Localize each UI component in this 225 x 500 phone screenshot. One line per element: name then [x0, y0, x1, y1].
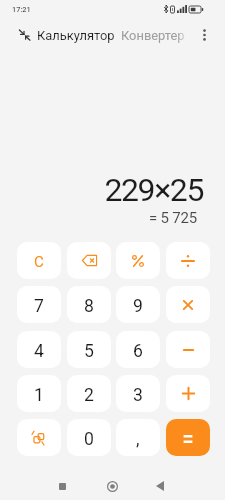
button[interactable]: 0 — [67, 419, 111, 456]
button[interactable] — [166, 419, 210, 456]
button[interactable] — [166, 242, 210, 279]
button[interactable]: , — [116, 419, 160, 456]
button[interactable]: 6 — [116, 331, 160, 368]
staticText: , — [136, 429, 140, 450]
button[interactable]: 1 — [17, 375, 61, 412]
staticText: 2 — [84, 385, 94, 406]
staticText: = 5 725 — [149, 209, 197, 227]
button[interactable]: Recents — [50, 474, 74, 498]
button[interactable]: 3 — [116, 375, 160, 412]
button[interactable]: Back — [148, 474, 172, 498]
staticText: 9 — [133, 296, 143, 317]
button[interactable] — [17, 419, 61, 456]
staticText: Конвертер — [121, 28, 185, 43]
staticText: 8 — [84, 296, 94, 317]
staticText: 1 — [34, 385, 44, 406]
staticText: 229×25 — [104, 171, 203, 209]
button[interactable] — [116, 242, 160, 279]
button[interactable] — [67, 242, 111, 279]
button[interactable] — [166, 375, 210, 412]
button[interactable]: C — [17, 242, 61, 279]
button[interactable]: Конвертер — [121, 28, 185, 43]
button[interactable]: 8 — [67, 286, 111, 323]
button[interactable]: 9 — [116, 286, 160, 323]
staticText: C — [34, 253, 44, 271]
staticText: 17:21 — [12, 5, 31, 14]
staticText: 4 — [34, 341, 44, 362]
staticText: 5 — [84, 341, 94, 362]
staticText: 7 — [34, 296, 44, 317]
button[interactable]: Home — [100, 474, 124, 498]
button[interactable]: Калькулятор — [37, 28, 115, 43]
staticText: Калькулятор — [37, 28, 115, 43]
button[interactable] — [166, 331, 210, 368]
button[interactable]: More options — [192, 23, 216, 47]
button[interactable]: 4 — [17, 331, 61, 368]
staticText: 0 — [84, 429, 94, 450]
staticText: 3 — [133, 385, 143, 406]
staticText: 6 — [133, 341, 143, 362]
button[interactable]: Collapse — [12, 23, 36, 47]
button[interactable]: 7 — [17, 286, 61, 323]
button[interactable] — [166, 286, 210, 323]
button[interactable]: 5 — [67, 331, 111, 368]
button[interactable]: 2 — [67, 375, 111, 412]
